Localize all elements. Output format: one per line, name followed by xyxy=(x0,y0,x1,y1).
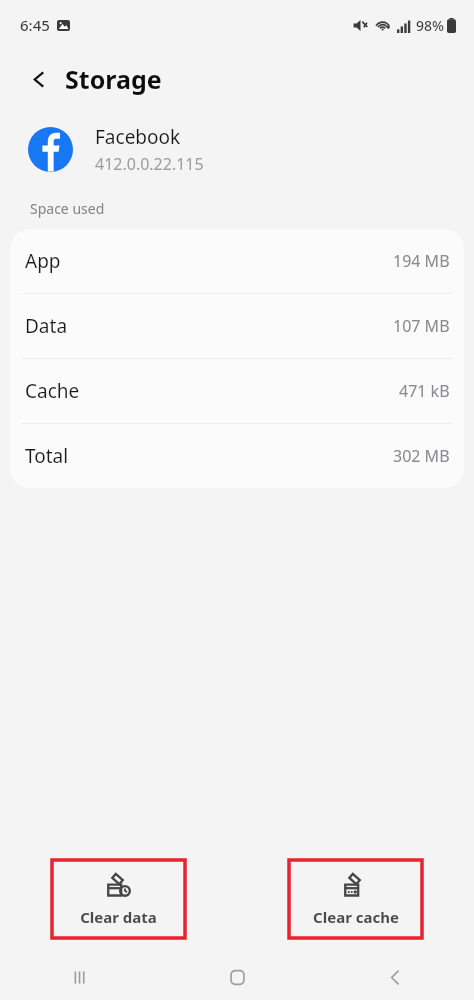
staticText: Clear cache xyxy=(313,907,399,927)
staticText: Total xyxy=(25,443,69,469)
staticText: Cache xyxy=(25,378,80,404)
staticText: 107 MB xyxy=(393,315,450,337)
staticText: 302 MB xyxy=(393,445,450,467)
button[interactable]: Cache xyxy=(10,359,464,423)
button[interactable]: Clear cache xyxy=(289,860,422,938)
staticText: Data xyxy=(25,313,68,339)
button[interactable]: Recents xyxy=(0,954,158,1000)
button[interactable]: Back xyxy=(22,62,56,96)
button[interactable]: Clear data xyxy=(52,860,185,938)
button[interactable]: Home xyxy=(158,954,316,1000)
staticText: 6:45 xyxy=(20,15,50,35)
button[interactable]: Data xyxy=(10,294,464,358)
button[interactable]: Back xyxy=(316,954,474,1000)
staticText: Space used xyxy=(30,199,105,218)
staticText: 412.0.0.22.115 xyxy=(95,153,204,175)
staticText: 471 kB xyxy=(399,380,450,402)
button[interactable]: Total xyxy=(10,424,464,488)
staticText: Clear data xyxy=(80,907,157,927)
staticText: Storage xyxy=(65,62,162,96)
staticText: Facebook xyxy=(95,124,181,150)
staticText: App xyxy=(25,248,61,274)
staticText: 194 MB xyxy=(393,250,450,272)
button[interactable]: App xyxy=(10,229,464,293)
staticText: 98% xyxy=(416,16,444,35)
